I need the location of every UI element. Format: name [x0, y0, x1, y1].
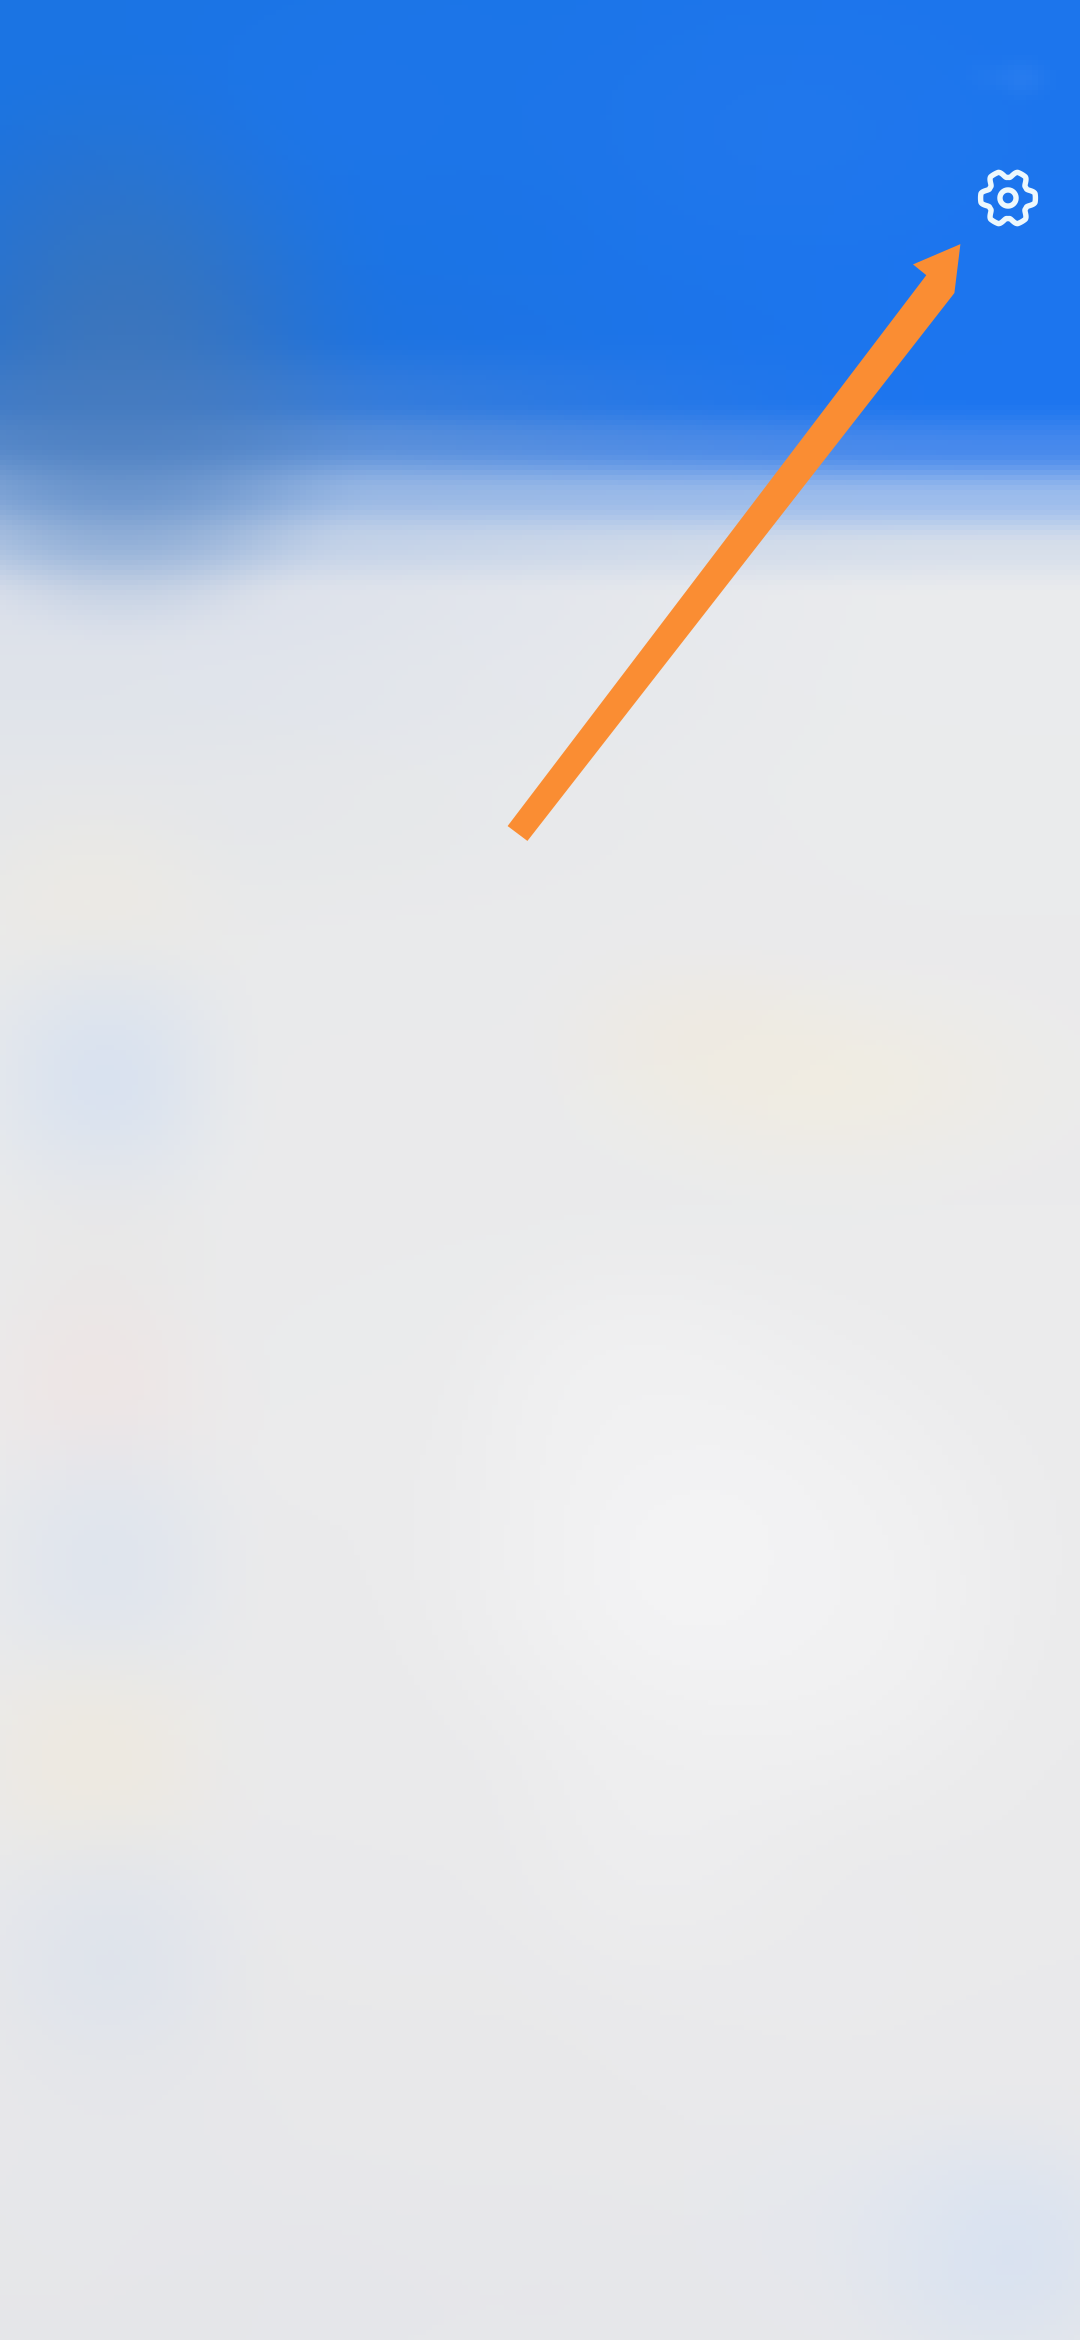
button[interactable]: Settings	[962, 152, 1054, 244]
